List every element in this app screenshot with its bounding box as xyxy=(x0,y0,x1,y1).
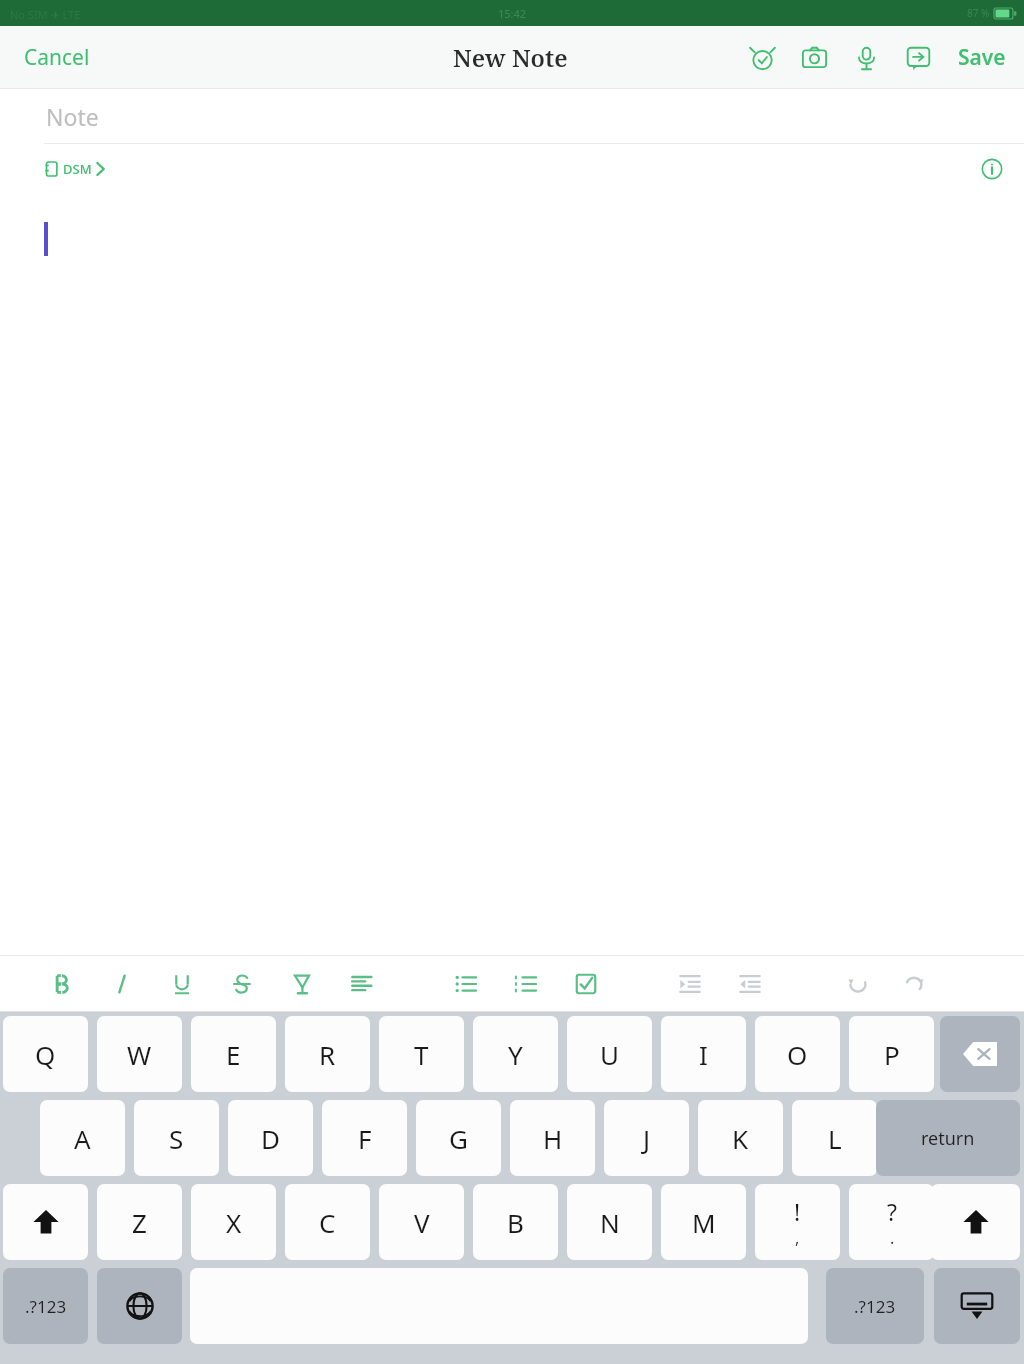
staticText: O xyxy=(787,1037,808,1072)
button[interactable]: Y xyxy=(473,1016,558,1092)
button[interactable]: B xyxy=(473,1184,558,1260)
button[interactable]: Undo xyxy=(834,960,882,1008)
button[interactable]: Hide keyboard xyxy=(934,1268,1020,1344)
staticText: K xyxy=(732,1121,749,1156)
button[interactable]: Numbered list xyxy=(502,960,550,1008)
button[interactable]: M xyxy=(661,1184,746,1260)
staticText: T xyxy=(414,1037,429,1072)
staticText: .?123 xyxy=(854,1295,896,1318)
staticText: .?123 xyxy=(25,1295,67,1318)
staticText: F xyxy=(358,1121,372,1156)
button[interactable]: Highlight xyxy=(278,960,326,1008)
staticText: 87 % xyxy=(967,6,990,20)
button[interactable]: X xyxy=(191,1184,276,1260)
button[interactable]: Shift xyxy=(3,1184,88,1260)
staticText: DSM xyxy=(63,160,92,178)
staticText: G xyxy=(449,1121,468,1156)
button[interactable]: Bulleted list xyxy=(442,960,490,1008)
button[interactable]: Checklist xyxy=(562,960,610,1008)
button[interactable]: Backspace xyxy=(940,1016,1020,1092)
staticText: Cancel xyxy=(24,43,90,72)
staticText: ? xyxy=(887,1196,897,1227)
button[interactable]: Indent xyxy=(666,960,714,1008)
staticText: L xyxy=(828,1121,842,1156)
button[interactable]: Audio xyxy=(840,34,892,82)
button[interactable]: H xyxy=(510,1100,595,1176)
button[interactable]: Italic xyxy=(98,960,146,1008)
button[interactable]: T xyxy=(379,1016,464,1092)
button[interactable]: return xyxy=(876,1100,1020,1176)
staticText: D xyxy=(261,1121,280,1156)
staticText: ! xyxy=(794,1196,801,1227)
staticText: V xyxy=(414,1205,430,1240)
button[interactable]: Reminder xyxy=(736,34,788,82)
button[interactable]: O xyxy=(755,1016,840,1092)
staticText: B xyxy=(507,1205,524,1240)
button[interactable]: V xyxy=(379,1184,464,1260)
staticText: S xyxy=(169,1121,184,1156)
staticText: New Note xyxy=(453,41,568,74)
button[interactable]: R xyxy=(285,1016,370,1092)
button[interactable]: Bold xyxy=(38,960,86,1008)
staticText: C xyxy=(319,1205,336,1240)
staticText: I xyxy=(699,1037,708,1072)
button[interactable]: .?123 xyxy=(826,1268,924,1344)
button[interactable]: F xyxy=(322,1100,407,1176)
staticText: Q xyxy=(35,1037,56,1072)
staticText: Z xyxy=(132,1205,147,1240)
staticText: 15:42 xyxy=(498,6,527,21)
staticText: return xyxy=(921,1126,975,1151)
button[interactable]: DSM xyxy=(40,156,109,182)
button[interactable]: Note xyxy=(0,89,1024,143)
button[interactable]: L xyxy=(792,1100,877,1176)
button[interactable]: S xyxy=(134,1100,219,1176)
staticText: E xyxy=(226,1037,241,1072)
button[interactable]: Redo xyxy=(890,960,938,1008)
staticText: H xyxy=(543,1121,563,1156)
button[interactable]: ? xyxy=(849,1184,934,1260)
button[interactable]: Q xyxy=(3,1016,88,1092)
staticText: W xyxy=(127,1037,152,1072)
staticText: J xyxy=(643,1121,651,1156)
staticText: R xyxy=(319,1037,336,1072)
button[interactable]: A xyxy=(40,1100,125,1176)
button[interactable]: W xyxy=(97,1016,182,1092)
button[interactable]: Z xyxy=(97,1184,182,1260)
button[interactable]: P xyxy=(849,1016,934,1092)
staticText: X xyxy=(226,1205,242,1240)
button[interactable]: Cancel xyxy=(6,33,108,82)
button[interactable]: I xyxy=(661,1016,746,1092)
staticText: N xyxy=(600,1205,620,1240)
button[interactable]: ! xyxy=(755,1184,840,1260)
button[interactable]: D xyxy=(228,1100,313,1176)
button[interactable]: Camera xyxy=(788,34,840,82)
staticText: Note xyxy=(46,101,99,132)
button[interactable]: Change keyboard xyxy=(97,1268,182,1344)
button[interactable]: J xyxy=(604,1100,689,1176)
button[interactable]: K xyxy=(698,1100,783,1176)
button[interactable]: Attach xyxy=(892,34,944,82)
staticText: No SIM ✈ LTE xyxy=(10,7,81,22)
button[interactable]: G xyxy=(416,1100,501,1176)
button[interactable]: Shift xyxy=(931,1184,1020,1260)
button[interactable]: E xyxy=(191,1016,276,1092)
staticText: . xyxy=(890,1227,895,1249)
button[interactable]: U xyxy=(567,1016,652,1092)
staticText: Y xyxy=(508,1037,523,1072)
button[interactable]: Outdent xyxy=(726,960,774,1008)
button[interactable]: Strikethrough xyxy=(218,960,266,1008)
button[interactable]: Save xyxy=(944,33,1020,82)
button[interactable]: C xyxy=(285,1184,370,1260)
button[interactable]: N xyxy=(567,1184,652,1260)
staticText: M xyxy=(692,1205,716,1240)
button[interactable]: Note info xyxy=(974,151,1010,187)
staticText: U xyxy=(600,1037,620,1072)
button[interactable]: Underline xyxy=(158,960,206,1008)
staticText: A xyxy=(74,1121,91,1156)
staticText: P xyxy=(884,1037,900,1072)
staticText: , xyxy=(795,1227,800,1249)
button[interactable]: Align xyxy=(338,960,386,1008)
button[interactable]: .?123 xyxy=(3,1268,88,1344)
